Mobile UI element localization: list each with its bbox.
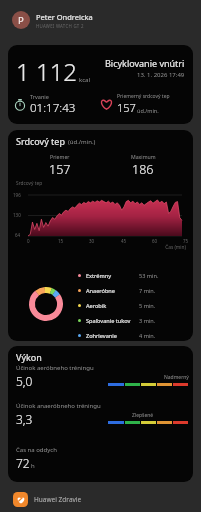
staticText: Priemer	[50, 153, 70, 160]
staticText: Trvanie	[30, 93, 49, 100]
staticText: Huawei Zdravie	[34, 495, 82, 504]
staticText: Výkon	[16, 351, 42, 363]
staticText: Srdcový tep	[16, 135, 65, 147]
staticText: 15	[58, 238, 64, 244]
staticText: 5,0	[16, 373, 33, 389]
staticText: h	[31, 462, 35, 470]
staticText: 3,3	[16, 411, 33, 427]
staticText: Účinok aeróbneho tréningu	[16, 364, 94, 372]
staticText: 5 min.	[139, 302, 156, 310]
staticText: Priemerný srdcový tep	[117, 93, 170, 100]
staticText: 196	[13, 192, 21, 198]
staticText: 3 min.	[139, 317, 156, 325]
staticText: 1 112	[16, 55, 78, 88]
button[interactable]: P	[0, 0, 201, 40]
staticText: 7 min.	[139, 287, 156, 295]
staticText: 4 min.	[139, 332, 156, 340]
staticText: 53 min.	[139, 272, 159, 280]
staticText: 75	[183, 238, 189, 244]
staticText: Zlepšené	[132, 412, 154, 419]
staticText: 13. 1. 2026 17:49	[137, 71, 185, 79]
staticText: 0	[27, 238, 30, 244]
staticText: kcal	[79, 76, 90, 84]
staticText: Čas na oddych	[16, 446, 57, 454]
staticText: Srdcový tep	[16, 180, 43, 187]
staticText: 01:17:43	[30, 100, 76, 116]
staticText: 157	[49, 161, 71, 178]
staticText: Bicyklovanie vnútri	[105, 57, 185, 69]
staticText: (úd./min.)	[68, 138, 96, 146]
staticText: Maximum	[131, 153, 156, 160]
staticText: úd./min.	[137, 107, 159, 114]
staticText: 64	[15, 232, 21, 238]
staticText: Účinok anaeróbneho tréningu	[16, 402, 101, 410]
staticText: HUAWEI WATCH GT 2	[36, 23, 84, 29]
staticText: 186	[132, 161, 154, 178]
staticText: 30	[89, 238, 95, 244]
staticText: 45	[121, 238, 127, 244]
staticText: 72	[16, 455, 30, 471]
staticText: 157	[117, 100, 136, 115]
staticText: Spaľovanie tukov	[86, 317, 139, 325]
staticText: Peter Ondreicka	[36, 12, 93, 22]
staticText: Zohrievanie	[86, 332, 139, 340]
staticText: Anaeróbne	[86, 287, 139, 295]
staticText: P	[18, 14, 24, 27]
staticText: Extrémny	[86, 272, 139, 280]
staticText: 60	[152, 238, 158, 244]
staticText: Aerobik	[86, 302, 139, 310]
staticText: 130	[13, 212, 21, 218]
staticText: Nadmerný	[164, 374, 189, 381]
staticText: Čas (min)	[8, 244, 186, 251]
button[interactable]: Huawei Zdravie	[0, 486, 201, 512]
